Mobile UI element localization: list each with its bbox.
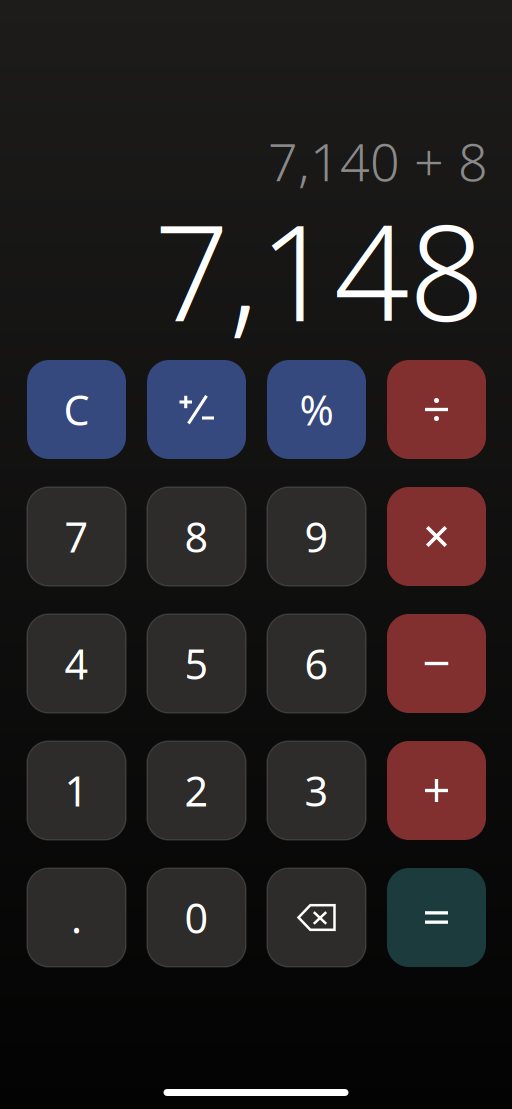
button[interactable]: 6 (267, 614, 366, 713)
staticText: 8 (184, 509, 208, 564)
button[interactable]: Toggle sign (147, 360, 246, 459)
button[interactable]: 1 (27, 741, 126, 840)
button[interactable]: 2 (147, 741, 246, 840)
button[interactable]: Divide (387, 360, 486, 459)
staticText: 2 (184, 763, 208, 818)
staticText: . (71, 890, 82, 945)
staticText: 4 (64, 636, 88, 691)
staticText: 7,140 + 8 (268, 126, 488, 196)
button[interactable]: Decimal point (27, 868, 126, 967)
button[interactable]: 3 (267, 741, 366, 840)
staticText: 9 (304, 509, 328, 564)
staticText: 6 (304, 636, 328, 691)
button[interactable]: Subtract (387, 614, 486, 713)
button[interactable]: 9 (267, 487, 366, 586)
staticText: 3 (304, 763, 328, 818)
button[interactable]: 4 (27, 614, 126, 713)
staticText: 0 (184, 890, 208, 945)
button[interactable]: 8 (147, 487, 246, 586)
button[interactable]: Percent (267, 360, 366, 459)
staticText: C (63, 382, 89, 437)
staticText: 7,148 (154, 182, 484, 358)
button[interactable]: 5 (147, 614, 246, 713)
button[interactable]: Equals (387, 868, 486, 967)
staticText: 7 (64, 509, 88, 564)
button[interactable]: Multiply (387, 487, 486, 586)
button[interactable]: Add (387, 741, 486, 840)
button[interactable]: Backspace (267, 868, 366, 967)
button[interactable]: 0 (147, 868, 246, 967)
button[interactable]: 7 (27, 487, 126, 586)
staticText: 1 (64, 763, 88, 818)
staticText: % (299, 382, 333, 437)
staticText: 5 (184, 636, 208, 691)
button[interactable]: Clear (27, 360, 126, 459)
